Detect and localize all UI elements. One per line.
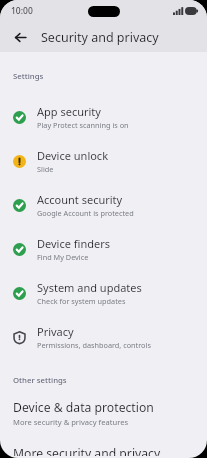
button[interactable]: Device & data protection [0,397,207,429]
staticText: Permissions, dashboard, controls [37,340,151,350]
staticText: Find My Device [37,252,89,262]
staticText: Account security [37,192,123,207]
button[interactable]: System and updates [0,271,207,315]
button[interactable]: Device finders [0,227,207,271]
staticText: Settings [13,71,44,82]
staticText: More security & privacy features [13,417,129,427]
staticText: Other settings [13,375,67,386]
staticText: Check for system updates [37,296,126,306]
button[interactable]: More security and privacy [0,443,207,458]
staticText: System and updates [37,280,142,295]
staticText: 10:00 [11,5,33,17]
staticText: Google Account is protected [37,208,134,218]
staticText: Security and privacy [41,29,159,46]
staticText: App security [37,104,101,119]
staticText: Privacy [37,324,74,339]
staticText: Device unlock [37,148,109,163]
button[interactable]: Back [7,24,33,50]
button[interactable]: App security [0,95,207,139]
staticText: Play Protect scanning is on [37,120,129,130]
staticText: More security and privacy [13,445,161,456]
button[interactable]: Account security [0,183,207,227]
staticText: Device finders [37,236,110,251]
button[interactable]: Privacy [0,315,207,359]
staticText: Slide [37,164,54,174]
button[interactable]: Device unlock [0,139,207,183]
staticText: Device & data protection [13,399,154,416]
